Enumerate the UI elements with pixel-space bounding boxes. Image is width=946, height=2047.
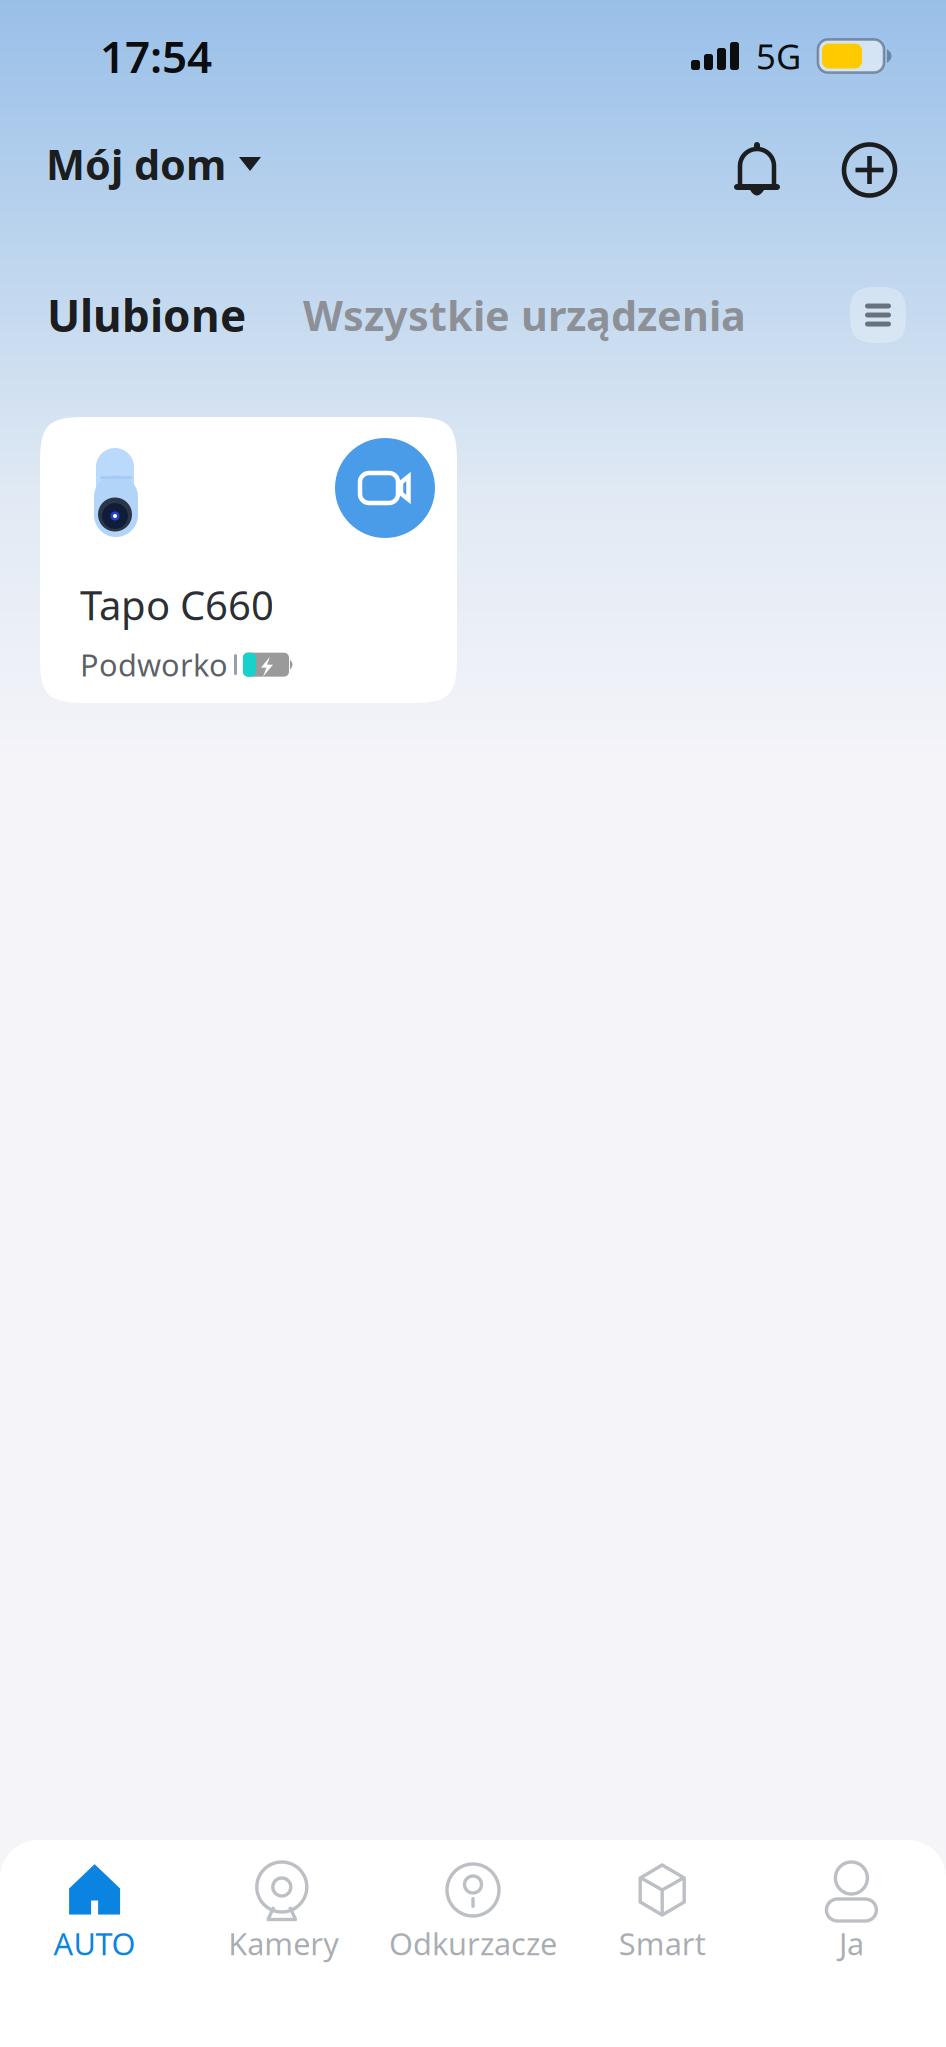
button[interactable]: Add device: [843, 143, 896, 196]
button[interactable]: Kamery: [189, 1840, 378, 1980]
button[interactable]: Mój dom: [46, 131, 261, 209]
button[interactable]: Notifications: [734, 142, 780, 198]
staticText: Tapo C660: [80, 578, 274, 631]
staticText: Mój dom: [46, 137, 226, 191]
button[interactable]: Tapo C660: [40, 417, 457, 703]
staticText: Ulubione: [47, 286, 246, 344]
button[interactable]: Ulubione: [47, 278, 246, 352]
button[interactable]: Odkurzacze: [378, 1840, 568, 1980]
staticText: Ja: [839, 1923, 864, 1964]
button[interactable]: AUTO: [0, 1840, 189, 1980]
staticText: 5G: [756, 33, 801, 79]
button[interactable]: Ja: [757, 1840, 946, 1980]
button[interactable]: Smart: [568, 1840, 757, 1980]
staticText: Kamery: [228, 1923, 339, 1964]
staticText: AUTO: [54, 1923, 136, 1964]
staticText: Odkurzacze: [389, 1923, 557, 1964]
button[interactable]: List options: [850, 287, 906, 343]
staticText: Wszystkie urządzenia: [303, 288, 746, 342]
button[interactable]: Wszystkie urządzenia: [303, 280, 746, 350]
staticText: Podworko: [80, 644, 228, 685]
staticText: Smart: [619, 1923, 706, 1964]
staticText: 17:54: [100, 27, 212, 85]
button[interactable]: Live view: [335, 438, 435, 538]
